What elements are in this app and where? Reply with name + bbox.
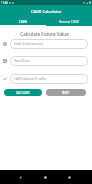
button[interactable]: Years/Term (10, 56, 88, 66)
other: Years (3, 59, 7, 63)
staticText: RESET (62, 91, 70, 94)
staticText: Years/Term (14, 59, 31, 63)
button[interactable]: Recents (67, 175, 72, 180)
button[interactable]: RESET (46, 89, 86, 96)
staticText: Reverse CAGR (59, 20, 79, 24)
staticText: CAGR Calculator (31, 9, 62, 14)
other: Amount (3, 42, 7, 46)
button[interactable]: CAGR without % suffix (10, 74, 88, 84)
staticText: CAGR without % suffix (14, 77, 47, 81)
staticText: Calculate Future Value (20, 31, 69, 37)
staticText: 11:40 (1, 1, 8, 5)
button[interactable]: CALCULATE (4, 89, 42, 96)
button[interactable]: Home (43, 175, 48, 180)
button[interactable]: CAGR (0, 17, 46, 26)
staticText: Enter Initial amount (14, 42, 44, 46)
other: Rate (3, 77, 7, 81)
staticText: CAGR (19, 20, 27, 24)
button[interactable]: Back (18, 175, 23, 180)
staticText: CALCULATE (16, 91, 30, 94)
button[interactable]: Enter Initial amount (10, 39, 88, 49)
button[interactable]: Reverse CAGR (46, 17, 92, 26)
